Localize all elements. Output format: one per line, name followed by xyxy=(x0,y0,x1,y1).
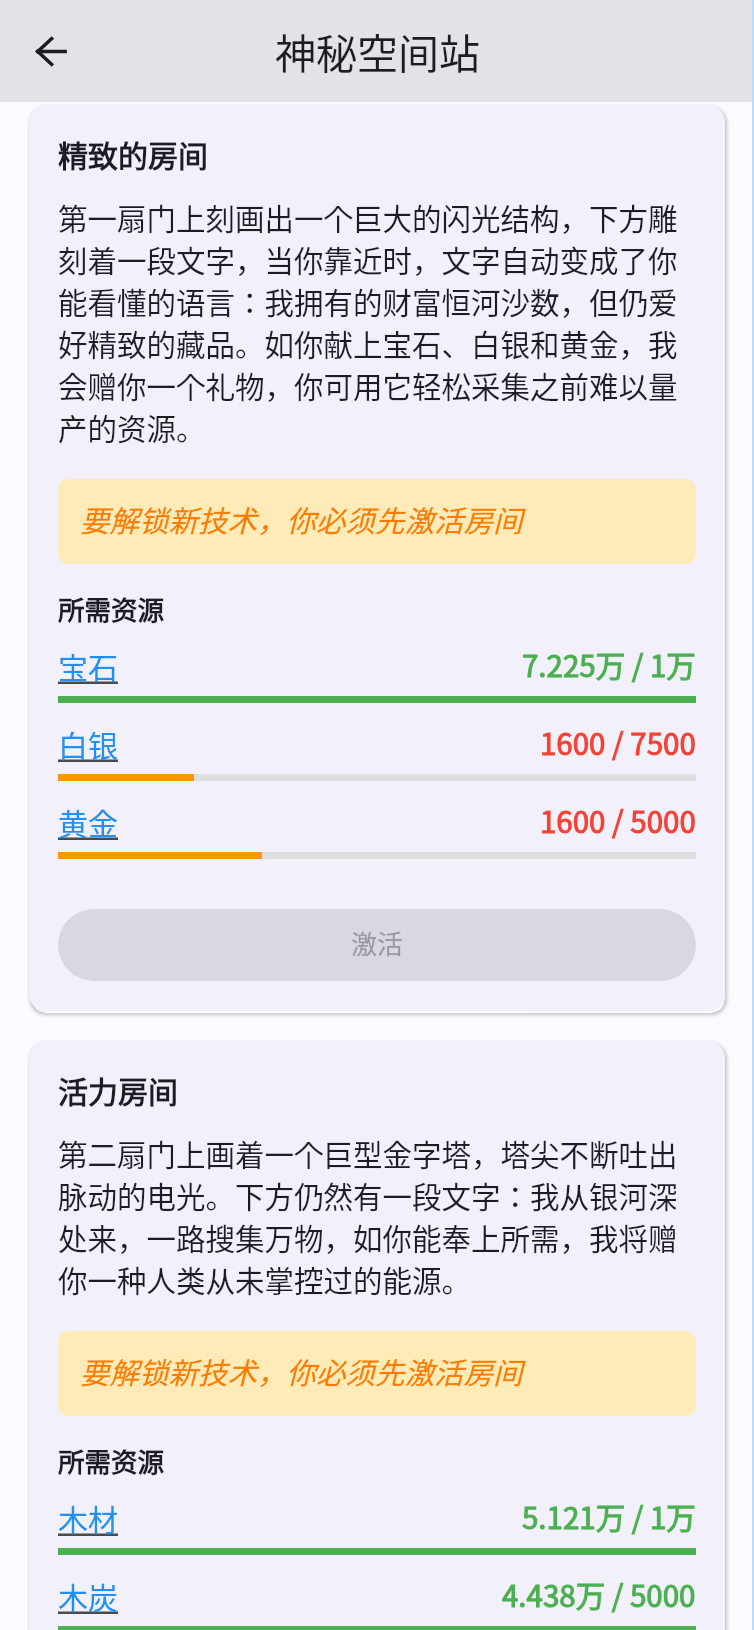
staticText: 激活 xyxy=(351,930,404,960)
button[interactable]: 木材 xyxy=(58,1504,118,1538)
staticText: 1600 / 7500 xyxy=(540,729,696,761)
button[interactable]: 木炭 xyxy=(58,1582,118,1616)
staticText: 5.121万 / 1万 xyxy=(522,1503,696,1535)
staticText: 第二扇门上画着一个巨型金字塔，塔尖不断吐出脉动的电光。下方仍然有一段文字：我从银… xyxy=(58,1132,696,1300)
button[interactable]: Back xyxy=(20,20,82,82)
staticText: 神秘空间站 xyxy=(275,32,480,78)
staticText: 活力房间 xyxy=(58,1074,178,1110)
button[interactable]: 激活 xyxy=(58,909,696,981)
staticText: 所需资源 xyxy=(58,598,164,626)
staticText: 7.225万 / 1万 xyxy=(522,651,696,683)
staticText: 1600 / 5000 xyxy=(540,807,696,839)
staticText: 要解锁新技术，你必须先激活房间 xyxy=(80,506,523,538)
button[interactable]: 宝石 xyxy=(58,652,118,686)
staticText: 所需资源 xyxy=(58,1450,164,1478)
staticText: 第一扇门上刻画出一个巨大的闪光结构，下方雕刻着一段文字，当你靠近时，文字自动变成… xyxy=(58,196,696,448)
button[interactable]: 白银 xyxy=(58,730,118,764)
staticText: 4.438万 / 5000 xyxy=(502,1581,696,1613)
staticText: 精致的房间 xyxy=(58,138,208,174)
button[interactable]: 黄金 xyxy=(58,808,118,842)
staticText: 要解锁新技术，你必须先激活房间 xyxy=(80,1358,523,1390)
